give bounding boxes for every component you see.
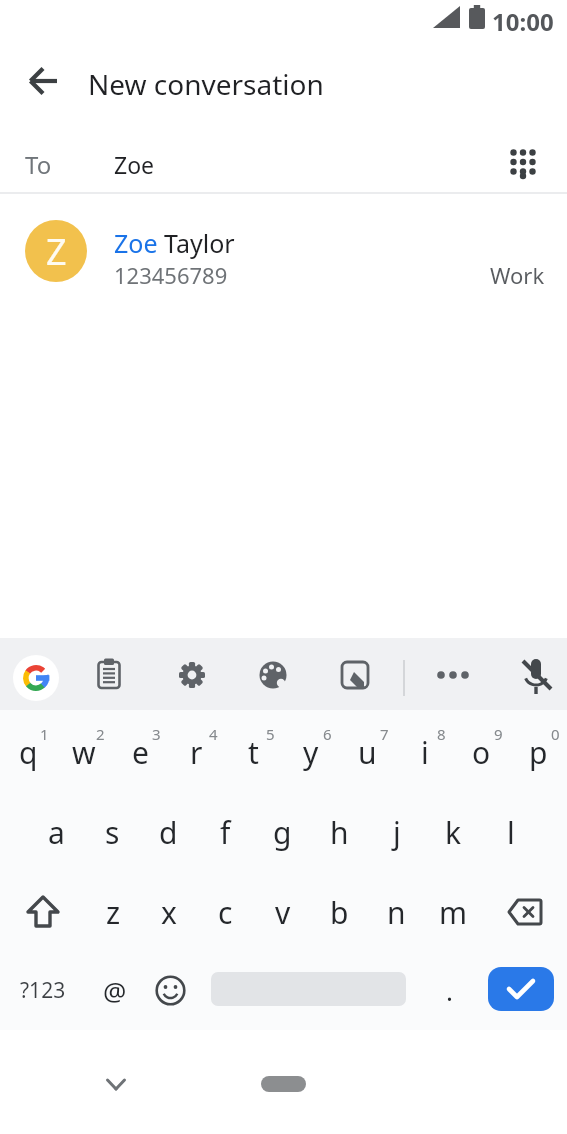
button[interactable] bbox=[512, 652, 558, 698]
button[interactable] bbox=[332, 652, 378, 698]
staticText: 6 bbox=[323, 724, 332, 744]
staticText: w bbox=[72, 732, 96, 773]
staticText: h bbox=[330, 812, 349, 853]
button[interactable]: v bbox=[254, 872, 311, 952]
button[interactable]: n bbox=[368, 872, 425, 952]
staticText: u bbox=[358, 732, 377, 773]
staticText: j bbox=[393, 812, 401, 853]
staticText: x bbox=[161, 892, 177, 933]
staticText: q bbox=[19, 732, 38, 773]
button[interactable] bbox=[169, 652, 215, 698]
button[interactable]: . bbox=[421, 962, 477, 1018]
staticText: r bbox=[190, 732, 203, 773]
button[interactable] bbox=[94, 1062, 138, 1106]
button[interactable]: o bbox=[453, 712, 510, 792]
staticText: c bbox=[218, 892, 233, 933]
button[interactable]: j bbox=[368, 792, 425, 872]
button[interactable] bbox=[482, 872, 567, 952]
button[interactable]: q bbox=[0, 712, 56, 792]
button[interactable]: g bbox=[254, 792, 311, 872]
button[interactable]: d bbox=[140, 792, 197, 872]
button[interactable]: l bbox=[482, 792, 539, 872]
button[interactable]: c bbox=[197, 872, 254, 952]
button[interactable] bbox=[261, 1076, 306, 1092]
staticText: Zoe Taylor bbox=[114, 226, 235, 260]
staticText: 9 bbox=[494, 724, 503, 744]
button[interactable] bbox=[250, 652, 296, 698]
staticText: Zoe bbox=[114, 149, 155, 180]
staticText: z bbox=[106, 892, 121, 933]
staticText: 1 bbox=[40, 724, 49, 744]
staticText: m bbox=[439, 892, 468, 933]
staticText: Z bbox=[46, 227, 67, 276]
button[interactable]: w bbox=[56, 712, 112, 792]
button[interactable]: k bbox=[425, 792, 482, 872]
staticText: d bbox=[159, 812, 178, 853]
button[interactable]: @ bbox=[87, 962, 143, 1018]
button[interactable]: b bbox=[311, 872, 368, 952]
button[interactable] bbox=[430, 652, 476, 698]
button[interactable]: x bbox=[141, 872, 197, 952]
button[interactable]: i bbox=[396, 712, 453, 792]
staticText: i bbox=[421, 732, 429, 773]
staticText: Work bbox=[490, 260, 545, 290]
staticText: . bbox=[446, 973, 453, 1008]
staticText: k bbox=[445, 812, 462, 853]
staticText: 2 bbox=[96, 724, 105, 744]
button[interactable]: e bbox=[112, 712, 168, 792]
staticText: 8 bbox=[437, 724, 446, 744]
staticText: 3 bbox=[152, 724, 161, 744]
staticText: 5 bbox=[266, 724, 275, 744]
button[interactable]: a bbox=[28, 792, 84, 872]
button[interactable]: s bbox=[84, 792, 140, 872]
button[interactable] bbox=[86, 652, 132, 698]
staticText: ?123 bbox=[20, 976, 66, 1005]
staticText: To bbox=[25, 148, 52, 181]
button[interactable]: r bbox=[168, 712, 225, 792]
staticText: a bbox=[48, 812, 65, 853]
button[interactable] bbox=[13, 655, 59, 701]
staticText: 10:00 bbox=[492, 5, 554, 38]
button[interactable]: f bbox=[197, 792, 254, 872]
staticText: New conversation bbox=[88, 65, 324, 103]
staticText: s bbox=[105, 812, 120, 853]
button[interactable]: z bbox=[85, 872, 141, 952]
button[interactable] bbox=[142, 962, 198, 1018]
button[interactable] bbox=[18, 55, 70, 107]
button[interactable]: t bbox=[225, 712, 282, 792]
staticText: l bbox=[507, 812, 515, 853]
staticText: b bbox=[330, 892, 349, 933]
staticText: v bbox=[275, 892, 291, 933]
button[interactable] bbox=[0, 872, 85, 952]
staticText: o bbox=[472, 732, 491, 773]
staticText: g bbox=[273, 812, 292, 853]
button[interactable]: h bbox=[311, 792, 368, 872]
button[interactable] bbox=[495, 136, 551, 192]
staticText: p bbox=[529, 732, 548, 773]
staticText: n bbox=[387, 892, 406, 933]
button[interactable]: u bbox=[339, 712, 396, 792]
staticText: t bbox=[248, 732, 259, 773]
staticText: y bbox=[303, 732, 319, 773]
staticText: @ bbox=[103, 973, 127, 1008]
button[interactable]: ?123 bbox=[8, 962, 78, 1018]
staticText: f bbox=[220, 812, 231, 853]
button[interactable]: y bbox=[282, 712, 339, 792]
staticText: 7 bbox=[380, 724, 389, 744]
button[interactable]: p bbox=[510, 712, 567, 792]
button[interactable]: m bbox=[425, 872, 482, 952]
staticText: 123456789 bbox=[114, 260, 228, 290]
button[interactable] bbox=[488, 967, 554, 1011]
staticText: 4 bbox=[209, 724, 218, 744]
staticText: e bbox=[132, 732, 149, 773]
staticText: 0 bbox=[551, 724, 560, 744]
button[interactable]: Z bbox=[0, 210, 567, 294]
